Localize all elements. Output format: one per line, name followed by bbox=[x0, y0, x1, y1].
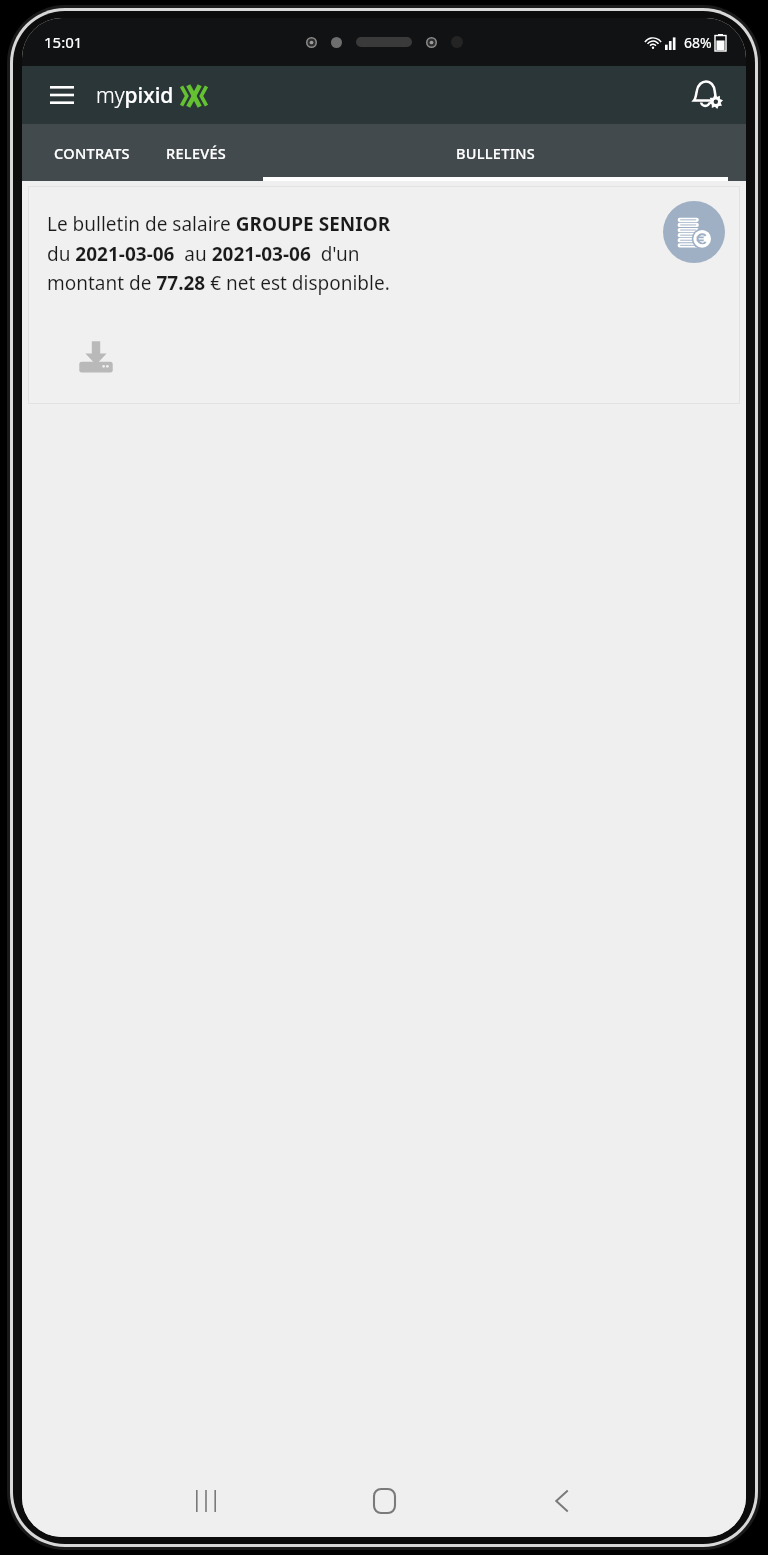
staticText: BULLETINS bbox=[456, 143, 535, 163]
button[interactable]: Notification settings bbox=[682, 70, 732, 120]
button[interactable]: Back bbox=[534, 1473, 590, 1529]
staticText: 68% bbox=[684, 33, 712, 52]
button[interactable]: Recents bbox=[178, 1473, 234, 1529]
other: Payslip bbox=[663, 201, 725, 263]
button[interactable]: Download bbox=[73, 335, 119, 381]
staticText: Le bulletin de salaire GROUPE SENIOR du … bbox=[47, 211, 391, 295]
staticText: mypixid bbox=[96, 81, 174, 110]
staticText: 15:01 bbox=[44, 32, 83, 52]
button[interactable]: Menu bbox=[40, 73, 84, 117]
staticText: RELEVÉS bbox=[166, 143, 227, 163]
button[interactable]: Home bbox=[356, 1473, 412, 1529]
button[interactable]: Payslip bbox=[29, 187, 739, 403]
button[interactable]: CONTRATS bbox=[36, 124, 148, 181]
staticText: CONTRATS bbox=[54, 143, 130, 163]
button[interactable]: RELEVÉS bbox=[148, 124, 245, 181]
button[interactable]: BULLETINS bbox=[245, 124, 746, 181]
